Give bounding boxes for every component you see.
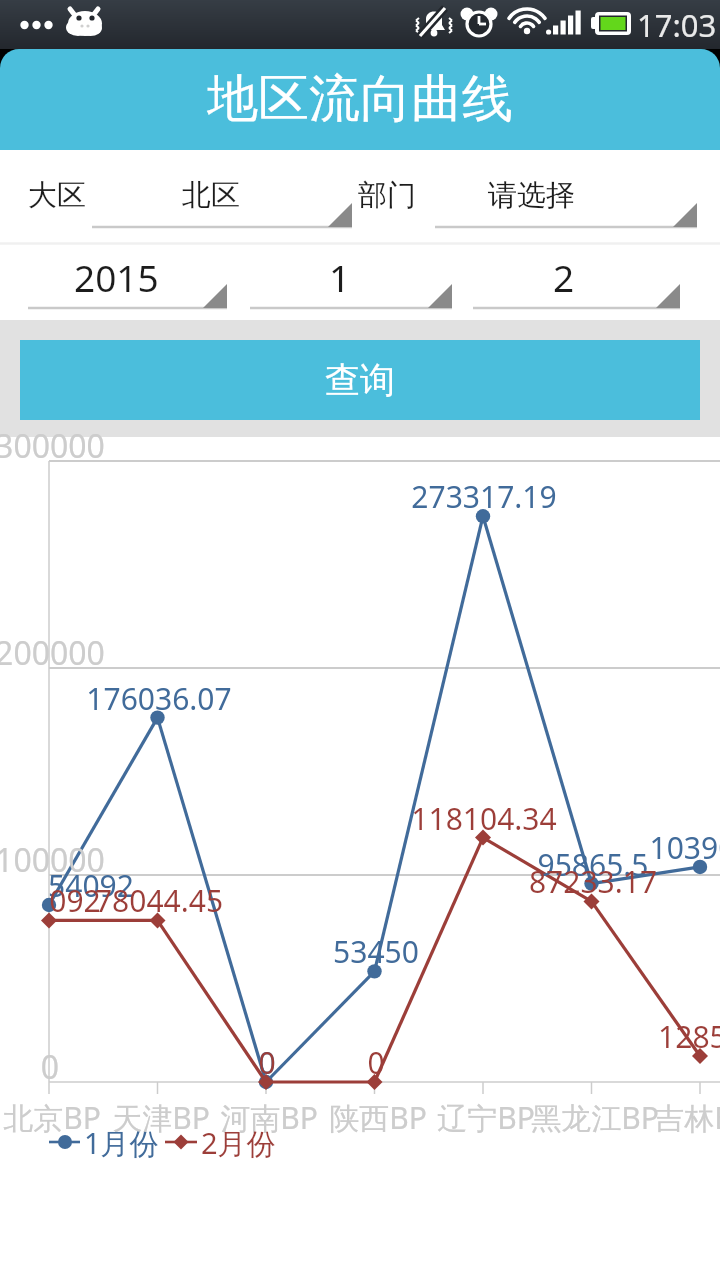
staticText: 北区	[182, 177, 240, 214]
staticText: 查询	[325, 358, 395, 402]
staticText: 103900	[571, 827, 720, 868]
staticText: 176036.07	[29, 678, 289, 719]
staticText: 2015	[74, 252, 159, 302]
staticText: 54092	[0, 865, 221, 906]
staticText: 78044.45	[29, 880, 289, 921]
staticText: 部门	[358, 177, 416, 214]
staticText: 53450	[246, 931, 506, 972]
staticText: 200000	[0, 631, 200, 675]
staticText: 吉林BP	[573, 1097, 720, 1138]
staticText: 河南BP	[139, 1097, 399, 1138]
staticText: 大区	[28, 177, 86, 214]
staticText: 0	[0, 1045, 200, 1089]
staticText: 1月份	[84, 1123, 159, 1163]
staticText: 天津BP	[31, 1097, 291, 1138]
staticText: 87233.17	[463, 861, 720, 902]
staticText: 100000	[0, 838, 200, 882]
staticText: 北京BP	[0, 1097, 182, 1138]
staticText: 2月份	[201, 1123, 276, 1163]
staticText: 2	[553, 252, 575, 302]
staticText: 0	[246, 1042, 506, 1083]
staticText: 092	[0, 880, 205, 921]
staticText: 273317.19	[354, 476, 614, 517]
button[interactable]: 查询	[20, 340, 700, 420]
staticText: 17:03	[637, 4, 717, 46]
staticText: 辽宁BP	[356, 1097, 616, 1138]
staticText: 118104.34	[354, 798, 614, 839]
staticText: 请选择	[488, 177, 575, 214]
staticText: 黑龙江BP	[465, 1097, 720, 1138]
staticText: 95865.5	[463, 844, 720, 885]
staticText: 陕西BP	[248, 1097, 508, 1138]
staticText: 地区流向曲线	[207, 67, 513, 131]
staticText: 0	[137, 1042, 397, 1083]
button[interactable]: 地区流向曲线	[0, 49, 720, 150]
staticText: 12850	[571, 1016, 720, 1057]
staticText: 0	[137, 1042, 397, 1083]
staticText: 300000	[0, 424, 200, 468]
staticText: 1	[329, 252, 351, 302]
